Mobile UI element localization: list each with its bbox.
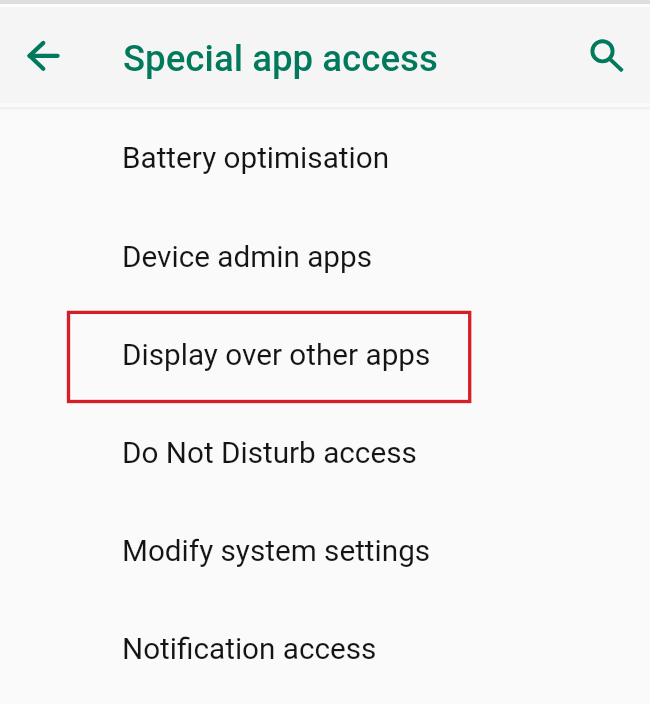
staticText: Device admin apps: [122, 239, 372, 274]
button[interactable]: Notification access: [0, 599, 650, 697]
staticText: Battery optimisation: [122, 140, 390, 175]
button[interactable]: Do Not Disturb access: [0, 403, 650, 501]
staticText: Display over other apps: [122, 337, 431, 372]
staticText: Notification access: [122, 631, 377, 666]
button[interactable]: Modify system settings: [0, 501, 650, 599]
staticText: Special app access: [123, 37, 438, 80]
button[interactable]: Display over other apps: [0, 305, 650, 403]
button[interactable]: Back: [17, 30, 69, 82]
button[interactable]: Device admin apps: [0, 207, 650, 305]
button[interactable]: Search: [575, 23, 631, 79]
staticText: Do Not Disturb access: [122, 435, 417, 470]
staticText: Modify system settings: [122, 533, 431, 568]
button[interactable]: Battery optimisation: [0, 108, 650, 206]
